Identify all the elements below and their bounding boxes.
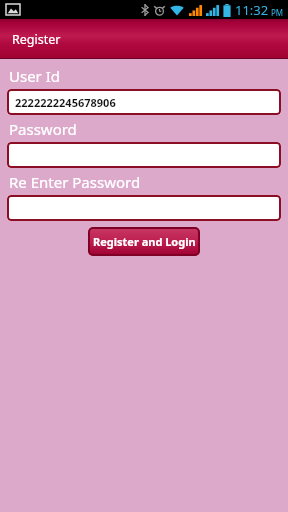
button[interactable]: Text input field (7, 195, 281, 221)
staticText: Re Enter Password (9, 172, 141, 192)
staticText: PM (271, 7, 284, 18)
staticText: Register and Login (93, 234, 196, 249)
staticText: Password (9, 119, 77, 139)
button[interactable]: Text input field (7, 142, 281, 168)
other: Screenshot notification (6, 4, 20, 15)
button[interactable]: 2222222245678906 (7, 89, 281, 115)
staticText: 11:32 (235, 1, 269, 19)
staticText: User Id (9, 66, 61, 86)
staticText: 2222222245678906 (15, 95, 116, 110)
staticText: Register (12, 31, 61, 48)
button[interactable]: Register and Login (88, 227, 200, 256)
